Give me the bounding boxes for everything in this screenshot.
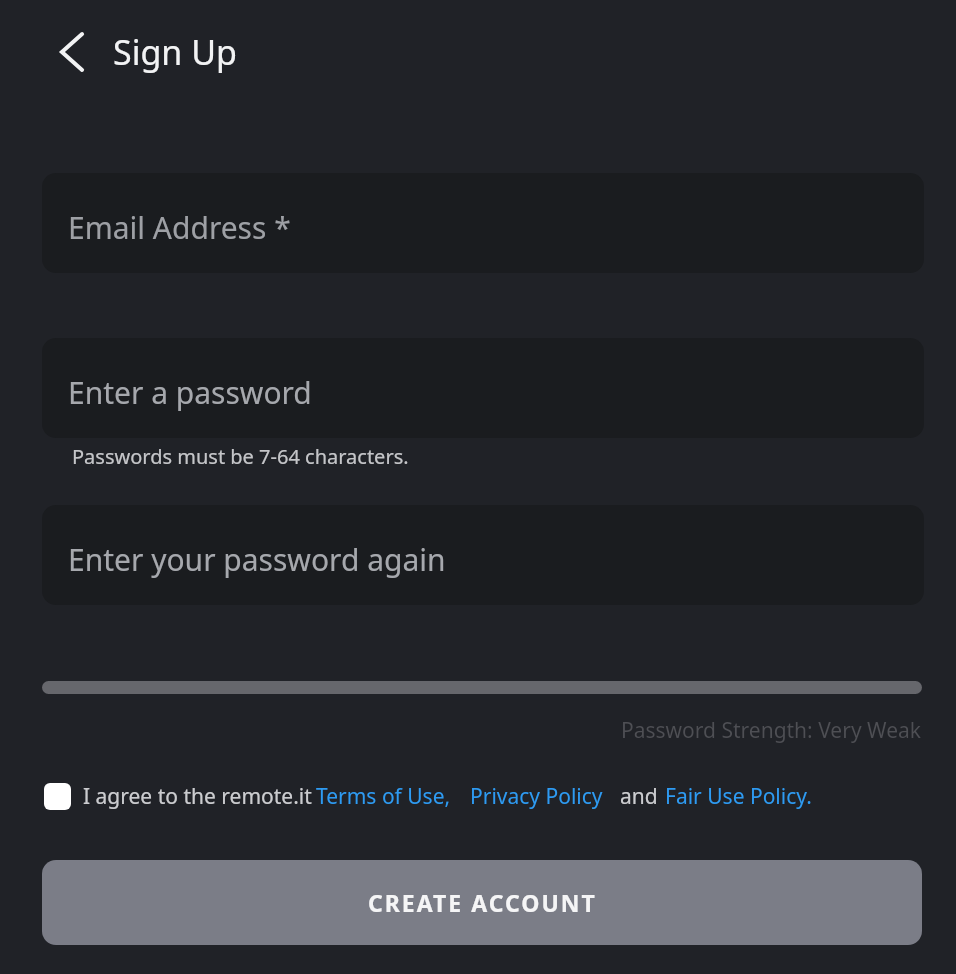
button[interactable]: Terms of Use, [316,782,451,811]
staticText: Enter a password [68,372,312,413]
button[interactable]: Enter your password again [42,505,924,605]
staticText: Passwords must be 7-64 characters. [72,443,409,470]
button[interactable]: CREATE ACCOUNT [42,860,922,945]
staticText: Email Address * [68,207,291,248]
staticText: CREATE ACCOUNT [368,887,597,918]
staticText: Enter your password again [68,539,446,580]
button[interactable]: Enter a password [42,338,924,438]
button[interactable]: Privacy Policy [470,782,603,811]
staticText: Password Strength: Very Weak [621,716,922,745]
button[interactable]: Email Address * [42,173,924,273]
button[interactable] [44,783,71,810]
staticText: Sign Up [113,29,237,75]
button[interactable] [52,32,92,72]
staticText: I agree to the remote.it [83,782,312,811]
button[interactable]: Fair Use Policy. [665,782,812,811]
staticText: and [620,782,658,811]
